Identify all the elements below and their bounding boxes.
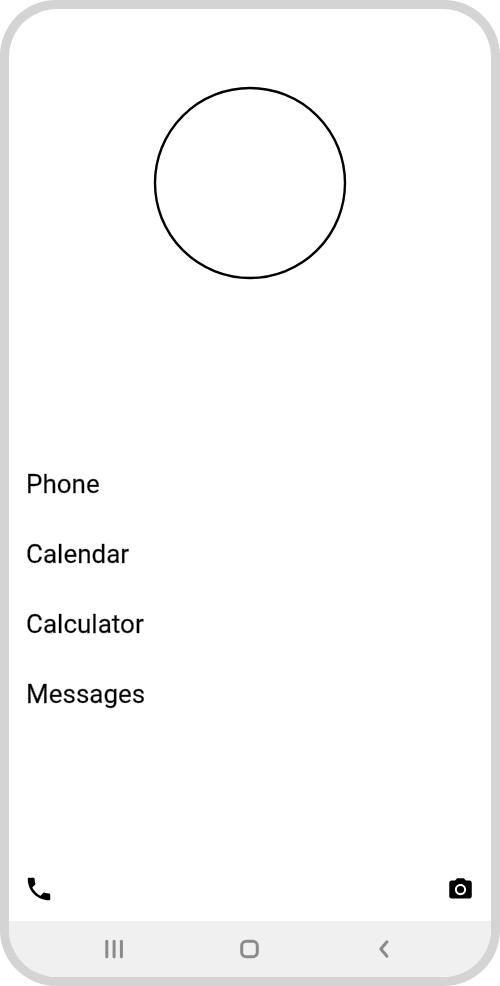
button[interactable]: Calculator bbox=[9, 589, 491, 659]
staticText: Phone bbox=[26, 469, 100, 499]
staticText: Calculator bbox=[26, 609, 144, 639]
button[interactable]: Back bbox=[330, 921, 491, 977]
button[interactable]: Camera bbox=[436, 865, 484, 913]
staticText: Calculator bbox=[26, 609, 144, 639]
button[interactable]: Recents bbox=[9, 921, 169, 977]
button[interactable]: Messages bbox=[9, 659, 491, 729]
button[interactable]: Calendar bbox=[9, 519, 491, 589]
button[interactable]: Phone bbox=[9, 449, 491, 519]
staticText: Phone bbox=[26, 469, 100, 499]
button[interactable]: Home bbox=[169, 921, 330, 977]
staticText: Calendar bbox=[26, 539, 130, 569]
button[interactable]: Call bbox=[15, 865, 63, 913]
staticText: Messages bbox=[26, 679, 146, 709]
staticText: Calendar bbox=[26, 539, 130, 569]
staticText: Messages bbox=[26, 679, 146, 709]
